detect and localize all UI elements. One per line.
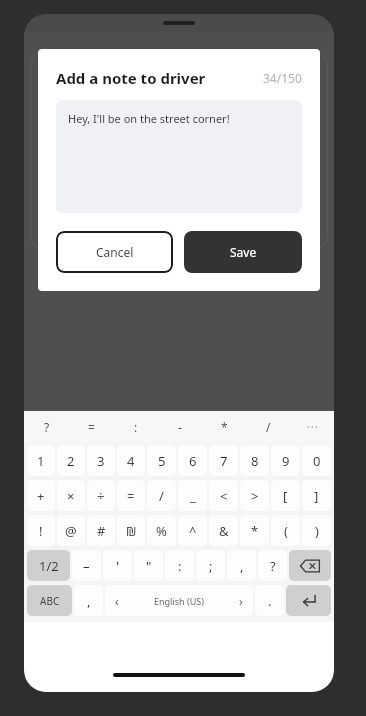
button[interactable]: ⋯	[290, 411, 334, 443]
staticText: English (US)	[154, 595, 204, 607]
staticText: ⋯	[306, 420, 318, 434]
button[interactable]: 1/2	[27, 550, 70, 581]
button[interactable]: "	[134, 550, 163, 581]
button[interactable]: )	[302, 515, 331, 546]
button[interactable]: :	[114, 411, 158, 443]
button[interactable]: #	[87, 515, 115, 546]
staticText: Add a note to driver	[56, 68, 206, 88]
staticText: ?	[270, 557, 276, 575]
staticText: 4	[127, 452, 135, 470]
staticText: &	[219, 522, 229, 540]
staticText: ,	[87, 592, 91, 610]
staticText: +	[37, 487, 45, 505]
staticText: ABC	[40, 594, 60, 608]
staticText: (	[284, 522, 288, 540]
staticText: )	[315, 522, 319, 540]
button[interactable]: /	[147, 480, 176, 511]
staticText: :	[178, 557, 182, 575]
button[interactable]: Save	[184, 231, 302, 273]
staticText: ›	[239, 593, 243, 609]
button[interactable]: <	[209, 480, 238, 511]
button[interactable]: ×	[57, 480, 85, 511]
staticText: Cancel	[96, 244, 134, 260]
button[interactable]: =	[117, 480, 145, 511]
button[interactable]: =	[69, 411, 114, 443]
staticText: .	[268, 592, 272, 610]
button[interactable]: +	[27, 480, 55, 511]
button[interactable]: 6	[178, 445, 207, 476]
button[interactable]: 5	[147, 445, 176, 476]
button[interactable]: &	[209, 515, 238, 546]
staticText: %	[156, 522, 167, 540]
staticText: 9	[282, 452, 290, 470]
button[interactable]: Hey, I'll be on the street corner!	[56, 100, 302, 213]
button[interactable]: !	[27, 515, 55, 546]
button[interactable]: :	[165, 550, 194, 581]
staticText: /	[266, 419, 271, 435]
staticText: ×	[67, 487, 75, 505]
button[interactable]: _	[178, 480, 207, 511]
staticText: '	[116, 557, 119, 575]
staticText: <	[220, 487, 228, 505]
staticText: ]	[314, 487, 319, 505]
button[interactable]: ₪	[117, 515, 145, 546]
button[interactable]: Backspace	[289, 550, 331, 581]
button[interactable]: 2	[57, 445, 85, 476]
button[interactable]: ,	[74, 585, 103, 616]
staticText: 5	[158, 452, 166, 470]
staticText: =	[88, 419, 95, 435]
button[interactable]: ,	[227, 550, 256, 581]
button[interactable]: Cancel	[56, 231, 173, 273]
button[interactable]: '	[103, 550, 132, 581]
button[interactable]: 3	[87, 445, 115, 476]
staticText: ÷	[97, 487, 105, 505]
button[interactable]: ?	[258, 550, 287, 581]
staticText: @	[65, 522, 77, 540]
staticText: /	[159, 487, 164, 505]
staticText: 6	[189, 452, 197, 470]
button[interactable]: ?	[24, 411, 69, 443]
button[interactable]: ÷	[87, 480, 115, 511]
staticText: ₪	[126, 522, 137, 540]
staticText: 7	[220, 452, 228, 470]
button[interactable]: [	[271, 480, 300, 511]
button[interactable]: 8	[240, 445, 269, 476]
staticText: =	[127, 487, 135, 505]
button[interactable]: /	[246, 411, 290, 443]
button[interactable]: *	[240, 515, 269, 546]
staticText: #	[97, 522, 106, 540]
button[interactable]: 4	[117, 445, 145, 476]
button[interactable]: ;	[196, 550, 225, 581]
staticText: –	[83, 557, 90, 575]
staticText: 1/2	[39, 557, 59, 575]
button[interactable]: ^	[178, 515, 207, 546]
staticText: 0	[313, 452, 321, 470]
staticText: "	[146, 557, 152, 575]
button[interactable]: .	[255, 585, 284, 616]
staticText: *	[221, 419, 228, 435]
button[interactable]: *	[202, 411, 246, 443]
button[interactable]: Enter	[286, 585, 331, 616]
button[interactable]: 7	[209, 445, 238, 476]
button[interactable]: @	[57, 515, 85, 546]
button[interactable]: (	[271, 515, 300, 546]
button[interactable]: %	[147, 515, 176, 546]
button[interactable]: -	[158, 411, 202, 443]
staticText: 8	[251, 452, 259, 470]
button[interactable]: 0	[302, 445, 331, 476]
button[interactable]: 9	[271, 445, 300, 476]
staticText: ‹	[115, 593, 119, 609]
staticText: Hey, I'll be on the street corner!	[68, 111, 230, 126]
button[interactable]: –	[72, 550, 101, 581]
button[interactable]: ]	[302, 480, 331, 511]
staticText: 1	[37, 452, 45, 470]
staticText: Save	[230, 244, 257, 260]
staticText: ?	[44, 419, 50, 435]
button[interactable]: >	[240, 480, 269, 511]
staticText: -	[178, 419, 182, 435]
button[interactable]: 1	[27, 445, 55, 476]
button[interactable]: ABC	[27, 585, 72, 616]
staticText: !	[39, 522, 43, 540]
staticText: _	[190, 487, 196, 505]
button[interactable]: ‹	[105, 585, 253, 616]
